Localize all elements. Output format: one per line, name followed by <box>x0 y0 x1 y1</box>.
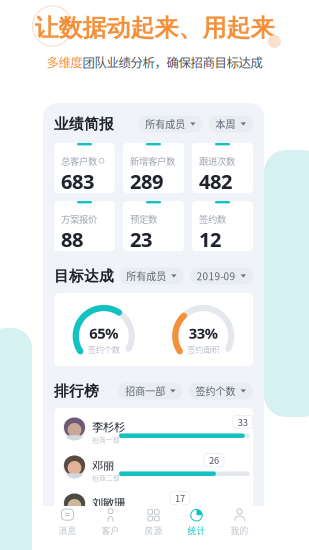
staticText: 26 <box>209 453 219 467</box>
staticText: 17 <box>175 491 185 505</box>
staticText: 客户 <box>101 524 119 537</box>
button[interactable]: 刘敏珊 <box>54 486 253 524</box>
button[interactable]: 邓丽 <box>54 448 253 486</box>
staticText: 本周 <box>216 117 236 131</box>
staticText: 招商一部 <box>92 435 120 445</box>
staticText: 招商二部 <box>92 473 120 483</box>
staticText: 招商一部 <box>92 511 120 521</box>
staticText: 签约个数 <box>88 343 120 355</box>
button[interactable]: 签约个数 <box>189 382 253 399</box>
staticText: 65% <box>89 323 118 343</box>
staticText: 邓丽 <box>92 456 114 473</box>
staticText: 所有成员 <box>126 269 166 283</box>
staticText: 33 <box>238 415 248 429</box>
button[interactable]: 跟进次数 <box>192 143 253 193</box>
staticText: 2019-09 <box>197 269 236 283</box>
staticText: 683 <box>61 167 94 195</box>
staticText: 总客户数 <box>61 154 97 167</box>
staticText: 所有成员 <box>145 117 185 131</box>
staticText: 多维度 <box>46 53 82 71</box>
staticText: 289 <box>130 167 163 195</box>
button[interactable]: 客户 <box>89 508 132 537</box>
staticText: 88 <box>61 225 83 253</box>
button[interactable]: 签约数 <box>192 201 253 251</box>
staticText: 李杉杉 <box>92 418 125 435</box>
staticText: 我的 <box>230 524 248 537</box>
button[interactable]: 所有成员 <box>119 267 184 284</box>
button[interactable]: 我的 <box>218 508 261 537</box>
staticText: 房源 <box>144 524 162 537</box>
staticText: 预定数 <box>130 212 157 225</box>
staticText: 团队业绩分析，确保招商目标达成 <box>82 53 262 71</box>
button[interactable]: 招商一部 <box>118 382 183 399</box>
staticText: 新增客户数 <box>130 154 175 167</box>
button[interactable]: 预定数 <box>123 201 184 251</box>
staticText: 签约面积 <box>187 343 219 355</box>
staticText: 签约个数 <box>196 384 236 398</box>
staticText: 482 <box>199 167 232 195</box>
button[interactable]: 统计 <box>175 508 218 537</box>
staticText: 跟进次数 <box>199 154 235 167</box>
staticText: 33% <box>189 323 218 343</box>
button[interactable]: 本周 <box>209 115 253 132</box>
button[interactable]: 消息 <box>46 508 89 537</box>
staticText: 消息 <box>58 524 76 537</box>
button[interactable]: 所有成员 <box>138 115 203 132</box>
staticText: 排行榜 <box>54 382 99 400</box>
staticText: 方案报价 <box>61 212 97 225</box>
staticText: 统计 <box>187 524 205 537</box>
staticText: 签约数 <box>199 212 226 225</box>
button[interactable]: 方案报价 <box>54 201 115 251</box>
button[interactable]: 房源 <box>132 508 175 537</box>
staticText: 招商一部 <box>125 384 165 398</box>
button[interactable]: 新增客户数 <box>123 143 184 193</box>
staticText: 让数据动起来、用起来 <box>34 13 274 43</box>
staticText: 23 <box>130 225 152 253</box>
staticText: 12 <box>199 225 221 253</box>
staticText: 刘敏珊 <box>92 494 125 511</box>
staticText: 业绩简报 <box>54 115 114 133</box>
button[interactable]: 总客户数 <box>54 143 115 193</box>
button[interactable]: 2019-09 <box>190 267 253 284</box>
staticText: 目标达成 <box>54 267 114 285</box>
button[interactable]: 李杉杉 <box>54 410 253 448</box>
